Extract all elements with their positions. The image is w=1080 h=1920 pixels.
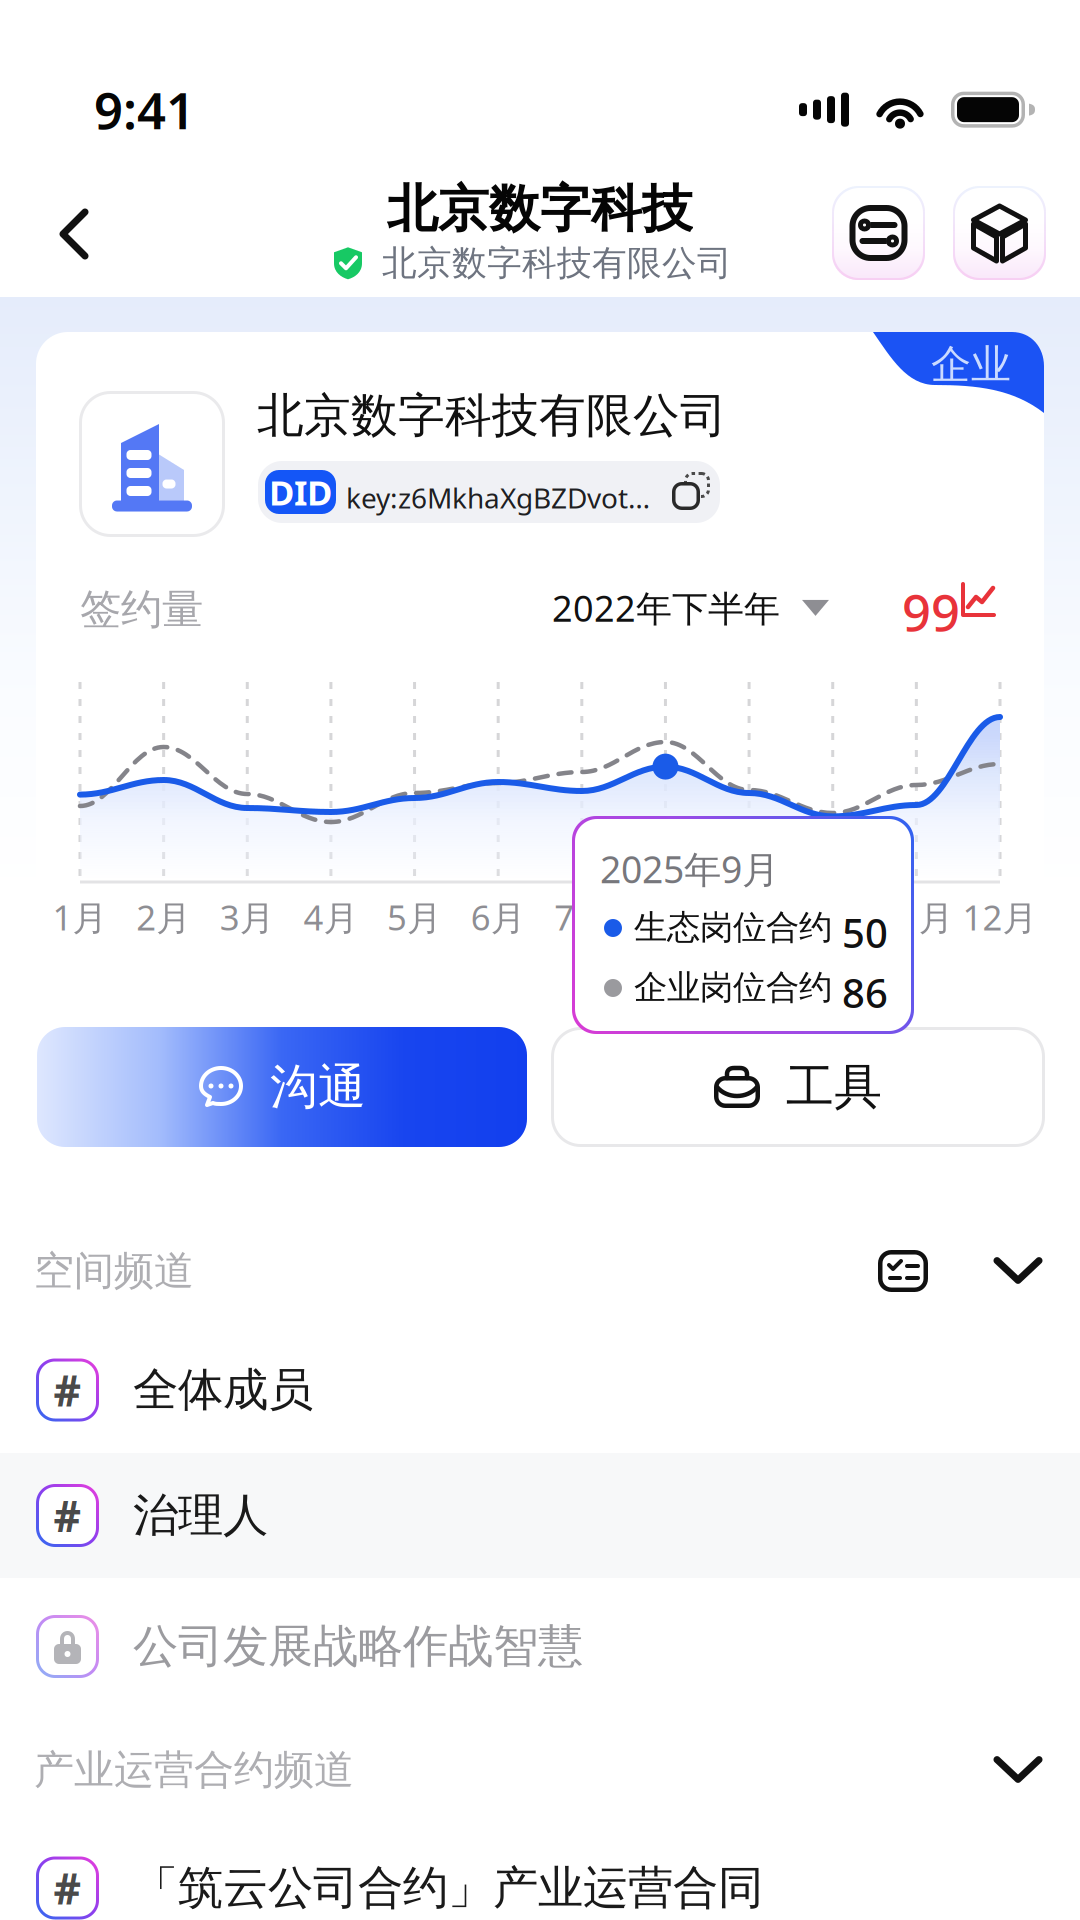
staticText: 北京数字科技 [387, 178, 693, 240]
button[interactable]: # [0, 1453, 1080, 1578]
button[interactable]: 折叠 [982, 1744, 1054, 1796]
staticText: 7月 [554, 894, 609, 940]
staticText: key:z6MkhaXgBZDvot… [346, 479, 650, 516]
staticText: 产业运营合约频道 [34, 1745, 354, 1794]
staticText: 生态岗位合约 [634, 907, 832, 948]
staticText: 治理人 [133, 1488, 268, 1543]
staticText: 9月 [722, 894, 777, 940]
staticText: 50 [842, 906, 888, 959]
button[interactable]: # [0, 1327, 1080, 1453]
staticText: 12月 [962, 894, 1037, 940]
staticText: 1月 [52, 894, 107, 940]
staticText: 6月 [471, 894, 526, 940]
button[interactable]: 公司发展战略作战智慧 [0, 1578, 1080, 1715]
staticText: 9:41 [94, 76, 195, 143]
staticText: 86 [842, 966, 888, 1019]
staticText: 公司发展战略作战智慧 [133, 1619, 583, 1674]
staticText: DID [269, 469, 332, 515]
staticText: 沟通 [270, 1057, 366, 1116]
staticText: # [53, 1487, 81, 1544]
staticText: 3月 [220, 894, 275, 940]
staticText: 4月 [303, 894, 358, 940]
staticText: # [53, 1860, 81, 1916]
staticText: 2月 [136, 894, 191, 940]
button[interactable]: 折叠 [982, 1245, 1054, 1297]
staticText: 企业岗位合约 [634, 967, 832, 1008]
button[interactable]: 任务清单 [866, 1238, 940, 1304]
staticText: 5月 [387, 894, 442, 940]
staticText: 北京数字科技有限公司 [257, 387, 727, 444]
button[interactable]: 返回 [0, 177, 132, 291]
staticText: 企业 [931, 340, 1011, 389]
staticText: 「筑云公司合约」产业运营合同 [133, 1860, 763, 1916]
staticText: 2022年下半年 [552, 584, 780, 632]
button[interactable]: 2022年下半年 [552, 584, 829, 632]
staticText: 签约量 [80, 584, 203, 635]
button[interactable]: 复制 [668, 470, 712, 514]
staticText: 8月 [638, 894, 693, 940]
staticText: 11月 [879, 894, 954, 940]
staticText: 2025年9月 [600, 844, 779, 894]
staticText: 空间频道 [34, 1246, 194, 1295]
button[interactable]: 应用 [953, 186, 1046, 280]
staticText: # [53, 1362, 81, 1418]
button[interactable]: 沟通 [37, 1027, 527, 1147]
staticText: 10月 [795, 894, 870, 940]
staticText: 北京数字科技有限公司 [382, 242, 732, 285]
button[interactable]: 设置 [832, 186, 925, 280]
staticText: 全体成员 [133, 1362, 313, 1418]
staticText: 工具 [786, 1057, 882, 1116]
button[interactable]: 工具 [551, 1027, 1045, 1147]
staticText: 99 [902, 578, 960, 645]
button[interactable]: # [0, 1825, 1080, 1920]
